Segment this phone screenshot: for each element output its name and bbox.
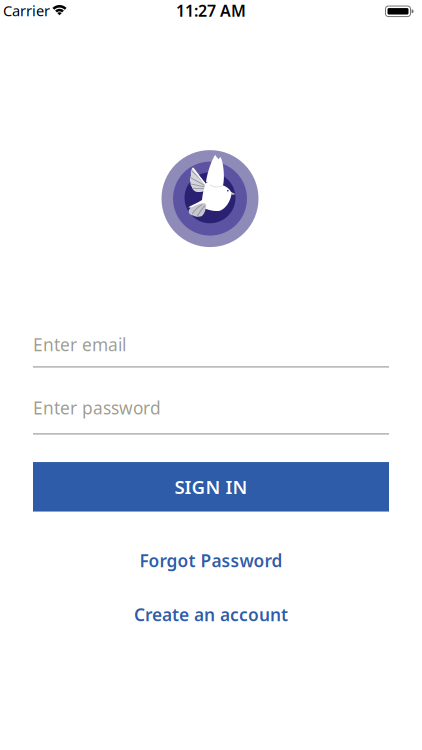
button[interactable]: Forgot Password [139, 549, 282, 572]
staticText: Enter password [33, 396, 161, 419]
staticText: 11:27 AM [176, 0, 246, 21]
staticText: Forgot Password [139, 549, 282, 572]
secureTextField[interactable]: Enter password [33, 396, 389, 419]
staticText: Enter email [33, 333, 126, 356]
staticText: Carrier [3, 1, 50, 20]
staticText: SIGN IN [174, 474, 247, 499]
textField[interactable]: Enter email [33, 333, 389, 356]
button[interactable]: SIGN IN [33, 462, 389, 512]
button[interactable]: Create an account [134, 603, 288, 626]
staticText: Create an account [134, 603, 288, 626]
